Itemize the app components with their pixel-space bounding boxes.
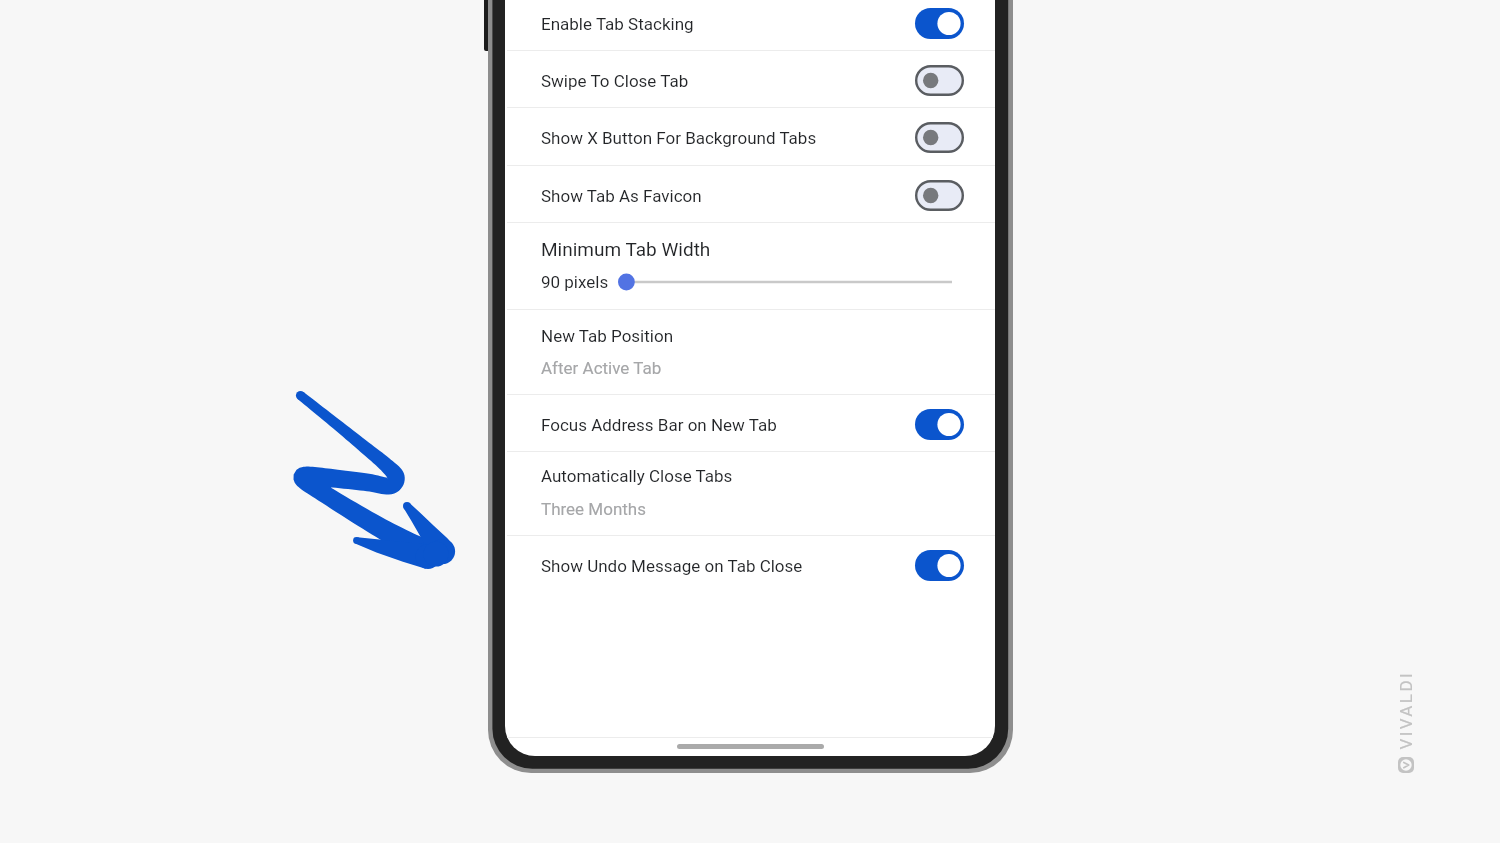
other: Arrow pointing at the tab settings — [290, 385, 460, 575]
staticText: 90 pixels — [541, 272, 609, 292]
staticText: After Active Tab — [541, 358, 662, 378]
staticText: Automatically Close Tabs — [541, 466, 733, 486]
staticText: Show X Button For Background Tabs — [541, 128, 817, 148]
button[interactable]: Minimum Tab Width — [505, 222, 995, 309]
button[interactable]: New Tab Position — [505, 309, 995, 394]
button[interactable]: Automatically Close Tabs — [505, 451, 995, 536]
staticText: Show Tab As Favicon — [541, 186, 702, 206]
staticText: Minimum Tab Width — [541, 238, 711, 260]
button[interactable]: Show Tab As Favicon — [505, 165, 995, 222]
button[interactable]: Focus Address Bar on New Tab — [505, 394, 995, 451]
button[interactable]: Swipe To Close Tab — [505, 50, 995, 107]
staticText: Focus Address Bar on New Tab — [541, 415, 777, 435]
staticText: Enable Tab Stacking — [541, 14, 694, 34]
staticText: Three Months — [541, 499, 646, 519]
staticText: New Tab Position — [541, 326, 674, 346]
staticText: Swipe To Close Tab — [541, 71, 689, 91]
staticText: VIVALDI — [1395, 670, 1415, 749]
button[interactable]: Show X Button For Background Tabs — [505, 107, 995, 164]
button[interactable]: Show Undo Message on Tab Close — [505, 535, 995, 592]
staticText: Show Undo Message on Tab Close — [541, 556, 803, 576]
other: Vivaldi — [1398, 757, 1414, 773]
button[interactable]: Enable Tab Stacking — [505, 0, 995, 50]
